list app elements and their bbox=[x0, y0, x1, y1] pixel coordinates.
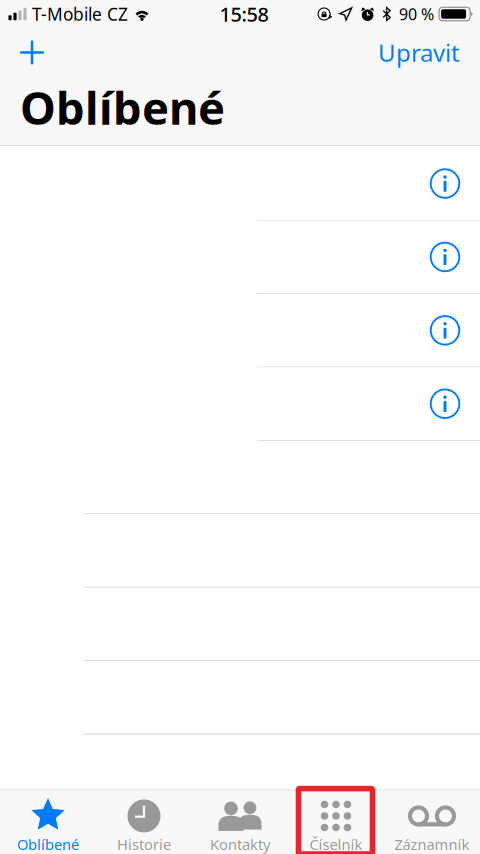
staticText: 15:58 bbox=[220, 1, 269, 27]
button[interactable]: Upravit bbox=[372, 34, 466, 71]
staticText: Upravit bbox=[378, 37, 460, 68]
button[interactable] bbox=[0, 147, 480, 220]
staticText: T-Mobile CZ bbox=[32, 2, 128, 25]
button[interactable]: Historie bbox=[96, 790, 192, 854]
button[interactable]: Záznamník bbox=[384, 790, 480, 854]
staticText: Historie bbox=[117, 834, 171, 854]
button[interactable]: Oblíbené bbox=[0, 790, 96, 854]
button[interactable]: Add favorite bbox=[11, 34, 53, 70]
button[interactable] bbox=[0, 221, 480, 293]
button[interactable]: Kontakty bbox=[192, 790, 288, 854]
button[interactable] bbox=[0, 294, 480, 367]
staticText: 90 % bbox=[399, 3, 434, 25]
staticText: Oblíbené bbox=[20, 77, 225, 137]
staticText: Kontakty bbox=[210, 834, 270, 854]
button[interactable] bbox=[0, 367, 480, 440]
staticText: Číselník bbox=[309, 834, 362, 854]
staticText: Oblíbené bbox=[17, 834, 79, 854]
button[interactable]: Číselník bbox=[288, 790, 384, 854]
staticText: Záznamník bbox=[394, 834, 469, 854]
